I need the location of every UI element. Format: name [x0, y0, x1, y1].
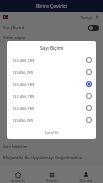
staticText: 123.456,789: [12, 58, 35, 63]
staticText: Anasayfa: [11, 179, 25, 183]
staticText: Birim sayısı: [3, 35, 26, 41]
button[interactable]: Anasayfa: [0, 165, 35, 183]
staticText: Birim Çevirici: [36, 3, 68, 10]
button[interactable]: 123 456,789: [7, 90, 96, 102]
staticText: 123 456.789: [12, 106, 35, 111]
button[interactable]: 123.456,789: [7, 54, 96, 66]
staticText: 123456.789: [12, 118, 34, 123]
button[interactable]: Sıvı Ölçüsü: [0, 22, 103, 33]
button[interactable]: 123456.789: [7, 114, 96, 126]
staticText: Mağazada Bu Uygulamayı Değerlendirin: [3, 155, 83, 161]
staticText: Birimler: [46, 179, 58, 183]
button[interactable]: Birimler: [35, 165, 69, 183]
button[interactable]: Birim sayısı: [0, 33, 103, 43]
other: Change language: [95, 15, 99, 19]
staticText: 123,456.789: [12, 82, 35, 87]
staticText: Sıvı Ölçüsü: [3, 25, 25, 31]
staticText: Türkçe: [80, 15, 93, 20]
button[interactable]: Bize ulaş: [69, 165, 103, 183]
button[interactable]: 123456,789: [7, 66, 96, 78]
button[interactable]: Language: [0, 12, 103, 22]
staticText: Sayı Biçimi: [40, 45, 64, 51]
other: Language: [3, 15, 8, 19]
staticText: 123456,789: [12, 70, 34, 75]
staticText: 123 456,789: [12, 94, 35, 99]
button[interactable]: 123 456.789: [7, 102, 96, 114]
button[interactable]: Mağazada Bu Uygulamayı Değerlendirin: [0, 152, 103, 163]
button[interactable]: Geri bildirim: [0, 141, 103, 152]
staticText: Bize ulaş: [79, 179, 93, 183]
staticText: İptal Et: [45, 130, 59, 136]
staticText: Geri bildirim: [3, 144, 28, 150]
button[interactable]: İptal Et: [41, 128, 63, 138]
button[interactable]: 123,456.789: [7, 78, 96, 90]
